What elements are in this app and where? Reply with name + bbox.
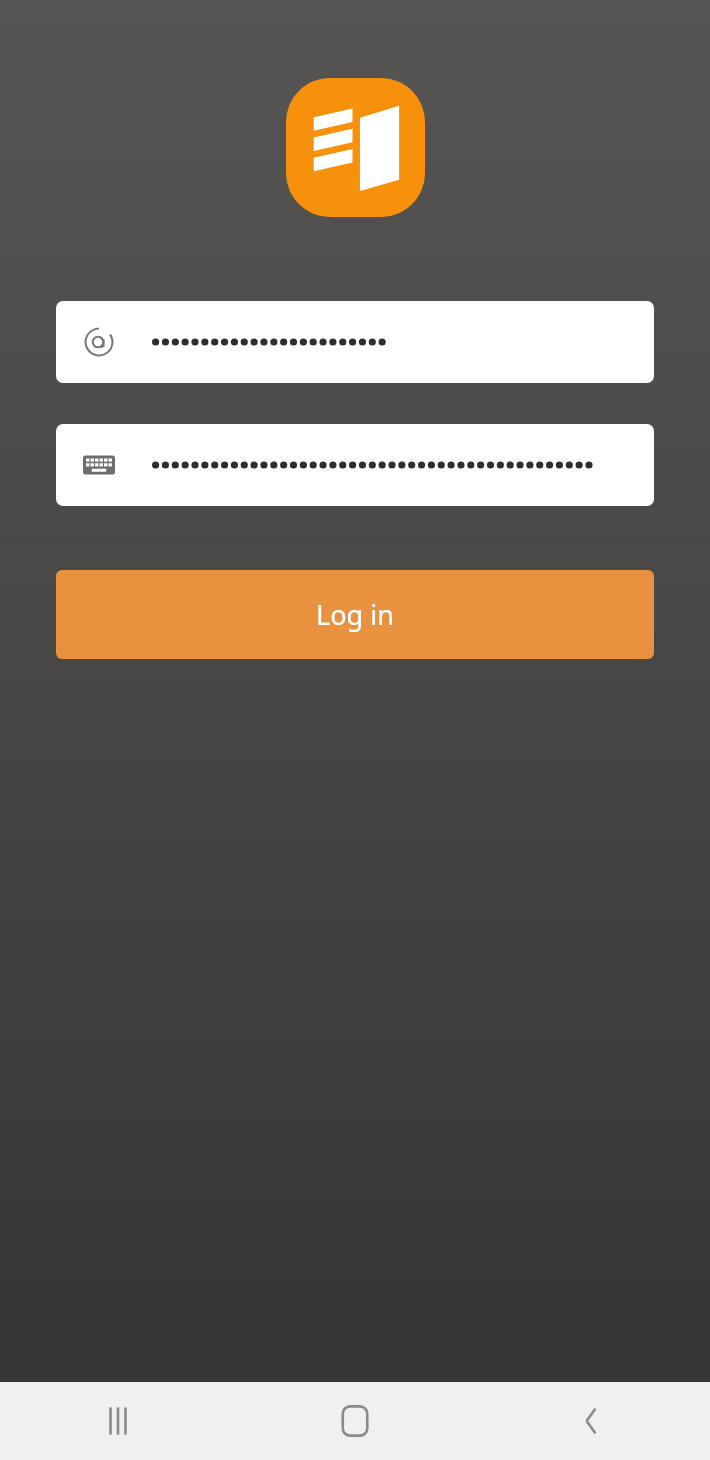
button[interactable]: Home [236,1382,473,1460]
button[interactable]: Password field [56,424,654,506]
staticText: Log in [316,596,394,633]
button[interactable]: Log in [56,570,654,659]
other: App logo [286,78,425,217]
button[interactable]: Email address field [56,301,654,383]
button[interactable]: Back [473,1382,710,1460]
button[interactable]: Recent apps [0,1382,236,1460]
